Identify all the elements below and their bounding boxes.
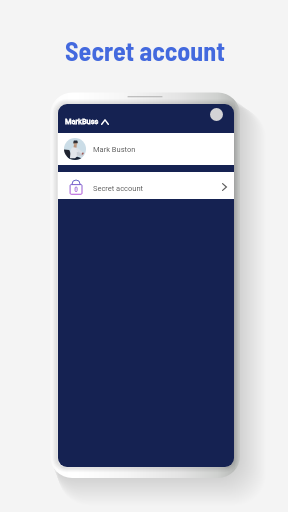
staticText: Mark Buston [93, 145, 136, 154]
staticText: MarkBuss [65, 117, 99, 126]
button[interactable]: Mark Buston [58, 133, 234, 165]
button[interactable]: MarkBuss [65, 117, 109, 126]
button[interactable]: Secret account [58, 172, 234, 199]
button[interactable]: Profile [210, 108, 223, 121]
staticText: Secret account [65, 35, 225, 66]
staticText: Secret account [93, 184, 144, 193]
